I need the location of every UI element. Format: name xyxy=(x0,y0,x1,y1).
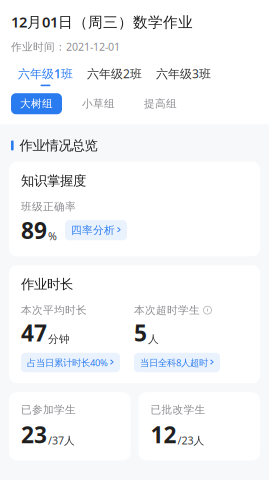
button[interactable]: 提高组 xyxy=(135,93,197,114)
button[interactable]: 六年级3班 xyxy=(149,66,218,86)
button[interactable]: 占当日累计时长40% xyxy=(21,353,120,372)
staticText: 23 xyxy=(21,419,47,449)
staticText: 作业情况总览 xyxy=(20,137,98,154)
staticText: /37人 xyxy=(48,433,75,447)
staticText: 本次超时学生 xyxy=(134,304,200,317)
button[interactable]: 小草组 xyxy=(73,93,135,114)
staticText: 提高组 xyxy=(144,97,177,110)
staticText: 分钟 xyxy=(48,333,70,346)
staticText: 大树组 xyxy=(20,97,53,110)
staticText: /23人 xyxy=(177,433,204,447)
staticText: 知识掌握度 xyxy=(21,173,86,189)
staticText: 12 xyxy=(150,419,176,449)
staticText: 89 xyxy=(21,215,47,245)
staticText: 班级正确率 xyxy=(21,200,76,213)
staticText: 当日全科8人超时 xyxy=(140,356,208,369)
button[interactable]: 当日全科8人超时 xyxy=(134,353,220,372)
staticText: 人 xyxy=(148,333,159,346)
staticText: 已批改学生 xyxy=(150,403,205,416)
staticText: 占当日累计时长40% xyxy=(27,356,108,369)
staticText: 六年级3班 xyxy=(156,66,211,81)
staticText: 六年级2班 xyxy=(87,66,142,81)
button[interactable]: 大树组 xyxy=(11,93,73,114)
staticText: 作业时间：2021-12-01 xyxy=(11,39,120,54)
staticText: 47 xyxy=(21,318,47,348)
staticText: 四率分析 xyxy=(71,224,115,237)
staticText: 六年级1班 xyxy=(18,66,73,81)
button[interactable]: 六年级2班 xyxy=(80,66,149,86)
staticText: 小草组 xyxy=(82,97,115,110)
staticText: 本次平均时长 xyxy=(21,304,87,317)
button[interactable]: 六年级1班 xyxy=(11,66,80,86)
button[interactable]: 四率分析 xyxy=(65,220,127,240)
staticText: 已参加学生 xyxy=(21,403,76,416)
staticText: 12月01日（周三）数学作业 xyxy=(11,12,193,31)
staticText: 5 xyxy=(134,318,147,348)
staticText: 作业时长 xyxy=(21,276,73,293)
staticText: % xyxy=(48,229,57,243)
